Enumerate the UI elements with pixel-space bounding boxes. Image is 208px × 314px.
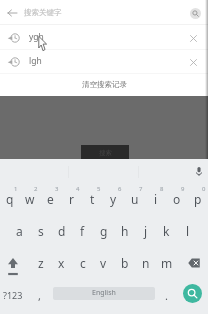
button[interactable]: p bbox=[187, 184, 208, 216]
staticText: . bbox=[165, 288, 168, 303]
staticText: , bbox=[38, 288, 41, 303]
button[interactable]: , bbox=[28, 280, 53, 314]
staticText: 9 bbox=[181, 185, 185, 193]
staticText: w bbox=[25, 191, 35, 207]
staticText: ygh bbox=[29, 31, 44, 43]
button[interactable]: . bbox=[155, 280, 177, 314]
button[interactable]: Search bbox=[183, 284, 202, 303]
button[interactable]: 清空搜索记录 bbox=[0, 75, 208, 96]
button[interactable]: b bbox=[114, 248, 135, 280]
staticText: 搜索关键字 bbox=[24, 8, 62, 17]
staticText: x bbox=[58, 255, 65, 271]
button[interactable]: Voice input bbox=[189, 159, 208, 184]
button[interactable]: s bbox=[30, 216, 51, 248]
staticText: v bbox=[100, 255, 107, 271]
button[interactable]: g bbox=[93, 216, 114, 248]
button[interactable]: y bbox=[103, 184, 124, 216]
staticText: 3 bbox=[55, 185, 59, 193]
staticText: f bbox=[80, 223, 85, 239]
button[interactable]: Remove bbox=[184, 50, 203, 74]
button[interactable]: lgh bbox=[0, 50, 208, 74]
staticText: i bbox=[154, 191, 158, 207]
staticText: a bbox=[16, 223, 23, 239]
button[interactable]: m bbox=[156, 248, 177, 280]
staticText: 清空搜索记录 bbox=[82, 80, 127, 89]
button[interactable]: w bbox=[20, 184, 40, 216]
button[interactable]: q bbox=[0, 184, 20, 216]
staticText: m bbox=[161, 255, 173, 271]
staticText: r bbox=[69, 191, 74, 207]
staticText: t bbox=[90, 191, 95, 207]
button[interactable]: Back bbox=[0, 0, 25, 25]
staticText: l bbox=[186, 223, 190, 239]
button[interactable]: Search bbox=[183, 1, 207, 25]
staticText: b bbox=[121, 255, 129, 271]
staticText: o bbox=[173, 191, 181, 207]
button[interactable]: x bbox=[51, 248, 72, 280]
staticText: lgh bbox=[29, 55, 42, 67]
button[interactable]: Remove bbox=[184, 26, 203, 50]
staticText: 0 bbox=[202, 185, 206, 193]
staticText: 8 bbox=[160, 185, 164, 193]
button[interactable]: a bbox=[9, 216, 30, 248]
staticText: 7 bbox=[139, 185, 143, 193]
staticText: g bbox=[100, 223, 108, 239]
button[interactable]: Shift bbox=[0, 248, 30, 280]
staticText: 4 bbox=[76, 185, 80, 193]
staticText: 5 bbox=[97, 185, 101, 193]
button[interactable]: l bbox=[177, 216, 198, 248]
button[interactable]: v bbox=[93, 248, 114, 280]
button[interactable]: d bbox=[51, 216, 72, 248]
staticText: ?123 bbox=[3, 289, 23, 301]
staticText: k bbox=[163, 223, 170, 239]
staticText: e bbox=[47, 191, 54, 207]
button[interactable]: ?123 bbox=[0, 280, 28, 314]
staticText: n bbox=[142, 255, 150, 271]
staticText: u bbox=[131, 191, 139, 207]
staticText: c bbox=[80, 255, 86, 271]
button[interactable]: n bbox=[135, 248, 156, 280]
button[interactable]: t bbox=[82, 184, 103, 216]
button[interactable]: u bbox=[124, 184, 145, 216]
staticText: d bbox=[58, 223, 66, 239]
button[interactable]: j bbox=[135, 216, 156, 248]
button[interactable]: i bbox=[145, 184, 166, 216]
button[interactable]: r bbox=[61, 184, 82, 216]
staticText: y bbox=[110, 191, 117, 207]
staticText: 1 bbox=[14, 185, 18, 193]
button[interactable]: f bbox=[72, 216, 93, 248]
staticText: q bbox=[6, 191, 14, 207]
staticText: s bbox=[38, 223, 44, 239]
button[interactable]: h bbox=[114, 216, 135, 248]
staticText: 搜索 bbox=[99, 149, 112, 157]
button[interactable]: c bbox=[72, 248, 93, 280]
button[interactable]: o bbox=[166, 184, 187, 216]
staticText: English bbox=[92, 288, 116, 298]
button[interactable]: Backspace bbox=[177, 248, 208, 280]
staticText: p bbox=[194, 191, 202, 207]
button[interactable]: ygh bbox=[0, 26, 208, 50]
button[interactable]: English bbox=[53, 287, 155, 300]
button[interactable]: e bbox=[40, 184, 61, 216]
button[interactable]: k bbox=[156, 216, 177, 248]
button[interactable]: z bbox=[30, 248, 51, 280]
staticText: j bbox=[144, 223, 148, 239]
staticText: 2 bbox=[34, 185, 38, 193]
staticText: 6 bbox=[118, 185, 122, 193]
staticText: z bbox=[38, 255, 44, 271]
staticText: h bbox=[121, 223, 129, 239]
